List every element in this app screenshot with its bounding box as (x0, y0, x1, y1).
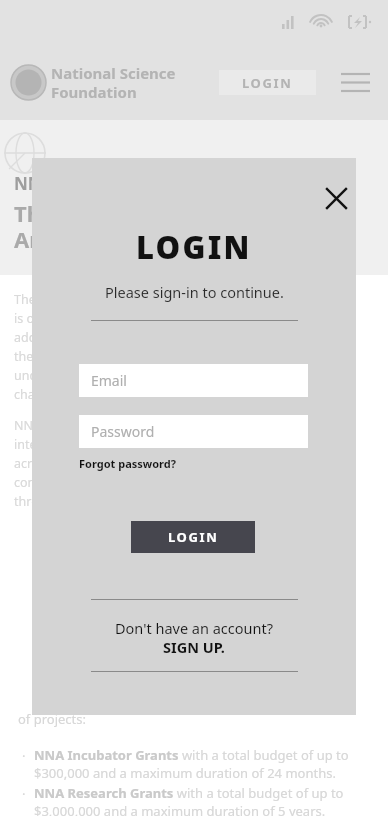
button[interactable]: LOGIN (131, 521, 255, 553)
staticText: · (22, 785, 26, 803)
staticText: NNA supports projects that are interdisc… (14, 417, 281, 510)
staticText: Don't have an account? SIGN UP. (115, 618, 273, 657)
button[interactable]: Close (310, 172, 362, 224)
button[interactable]: Menu (336, 66, 374, 98)
staticText: · (22, 747, 26, 765)
staticText: The Navigating the New Arctic program (14, 198, 280, 255)
button[interactable]: Forgot password? (79, 456, 176, 471)
staticText: NNA Incubator Grants with a total budget… (34, 746, 349, 782)
staticText: LOGIN (136, 226, 252, 268)
staticText: LOGIN (168, 528, 219, 546)
staticText: Email (91, 371, 127, 390)
staticText: LOGIN (242, 74, 293, 92)
staticText: Forgot password? (79, 456, 176, 471)
staticText: National Science Foundation (51, 63, 176, 102)
button[interactable]: LOGIN (219, 70, 316, 95)
staticText: Password (91, 422, 155, 441)
button[interactable]: Don't have an account? SIGN UP. (115, 618, 273, 657)
staticText: Please sign-in to continue. (105, 282, 284, 302)
staticText: NNA Research Grants with a total budget … (34, 784, 344, 816)
button[interactable]: Password (79, 415, 308, 448)
staticText: NNA (14, 172, 54, 195)
staticText: The Navigating the New Arctic (NNA) prog… (14, 291, 293, 403)
staticText: of projects: (18, 710, 87, 728)
button[interactable]: Email (79, 364, 308, 397)
